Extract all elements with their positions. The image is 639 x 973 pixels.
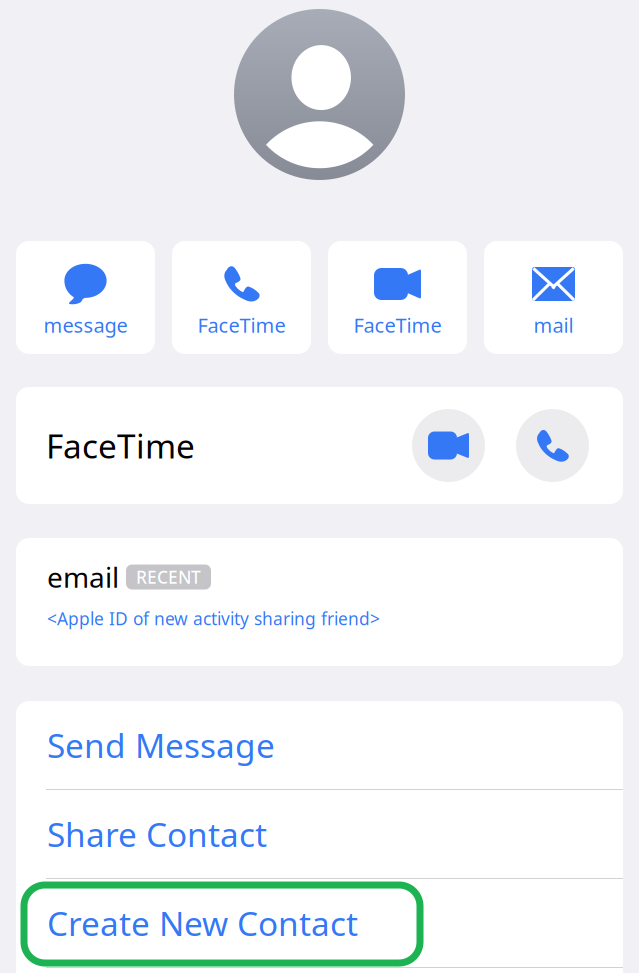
button[interactable]: FaceTime [172, 241, 311, 354]
button[interactable]: Create New Contact [16, 879, 623, 967]
staticText: Send Message [47, 723, 275, 767]
button[interactable]: Share Contact [16, 790, 623, 878]
staticText: FaceTime [197, 312, 285, 338]
staticText: FaceTime [353, 312, 441, 338]
staticText: email [47, 558, 119, 596]
button[interactable]: FaceTime audio [516, 409, 589, 482]
staticText: mail [533, 312, 573, 338]
staticText: Share Contact [47, 812, 267, 856]
staticText: RECENT [136, 565, 201, 588]
staticText: FaceTime [46, 423, 195, 468]
button[interactable]: message [16, 241, 155, 354]
staticText: <Apple ID of new activity sharing friend… [47, 607, 380, 630]
staticText: Create New Contact [47, 901, 358, 945]
button[interactable]: Send Message [16, 701, 623, 789]
button[interactable]: FaceTime video [412, 409, 485, 482]
button[interactable]: FaceTime [328, 241, 467, 354]
button[interactable]: mail [484, 241, 623, 354]
staticText: message [43, 312, 127, 338]
